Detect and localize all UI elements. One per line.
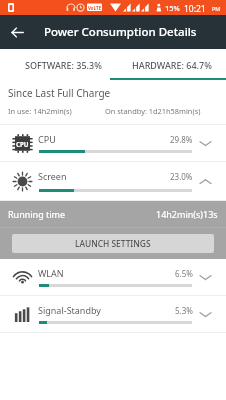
button[interactable]: SOFTWARE: 35.3%: [9, 49, 117, 80]
staticText: HARDWARE: 64.7%: [132, 59, 212, 71]
staticText: Since Last Full Charge: [8, 86, 111, 100]
staticText: PM: [212, 5, 221, 12]
staticText: 15%: [165, 3, 180, 13]
button[interactable]: LAUNCH SETTINGS: [12, 234, 214, 253]
staticText: CPU: [38, 133, 56, 145]
staticText: SOFTWARE: 35.3%: [25, 59, 102, 71]
button[interactable]: CPU: [0, 125, 226, 162]
staticText: Signal-Standby: [38, 304, 101, 316]
staticText: Screen: [38, 170, 67, 182]
button[interactable]: Expand Signal-Standby: [195, 304, 216, 325]
button[interactable]: HARDWARE: 64.7%: [117, 49, 226, 80]
staticText: 5.3%: [175, 305, 193, 316]
staticText: 23.0%: [170, 171, 193, 182]
button[interactable]: Collapse Screen: [195, 171, 216, 192]
staticText: 10:21: [184, 3, 206, 15]
staticText: In use: 14h2min(s): [8, 106, 72, 116]
staticText: On standby: 1d21h58min(s): [105, 106, 201, 116]
staticText: Running time: [8, 208, 66, 220]
button[interactable]: WLAN: [0, 259, 226, 296]
staticText: Power Consumption Details: [44, 24, 197, 40]
staticText: VoLTE: [88, 5, 102, 11]
staticText: LAUNCH SETTINGS: [75, 238, 151, 249]
staticText: WLAN: [38, 267, 64, 279]
staticText: 14h2min(s)13s: [156, 208, 218, 220]
staticText: 29.8%: [170, 134, 193, 145]
button[interactable]: Expand WLAN: [195, 267, 216, 288]
staticText: CPU: [16, 140, 29, 148]
button[interactable]: Back: [0, 15, 34, 49]
button[interactable]: Screen: [0, 162, 226, 201]
button[interactable]: Signal-Standby: [0, 296, 226, 333]
button[interactable]: Expand CPU: [195, 133, 216, 154]
staticText: 6.5%: [175, 268, 193, 279]
